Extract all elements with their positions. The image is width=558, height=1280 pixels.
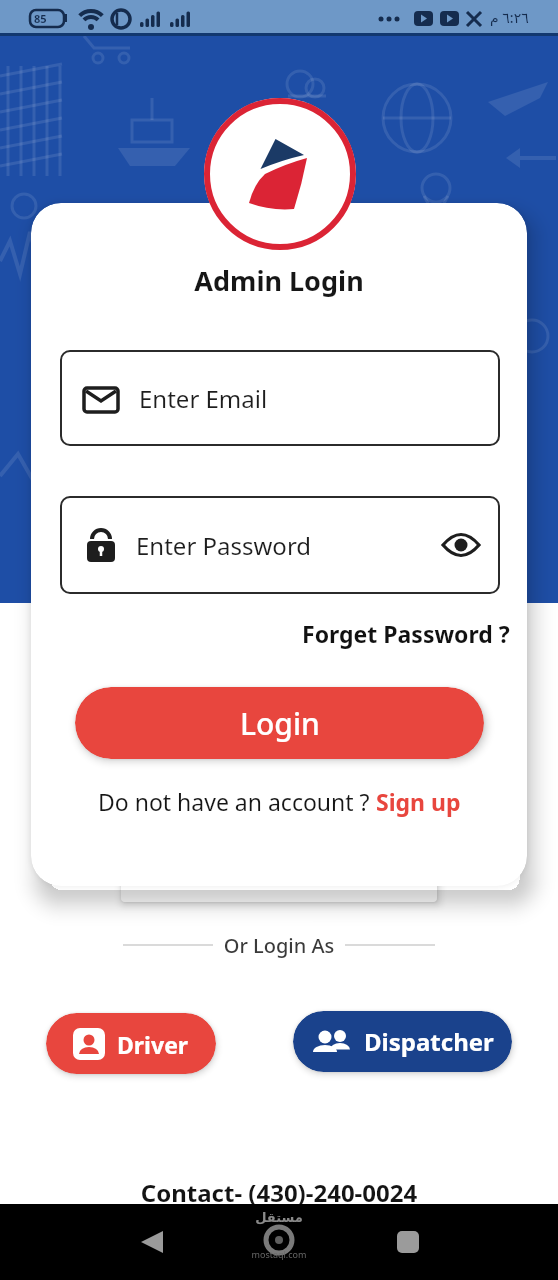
button[interactable]: Enter Password [60,496,500,594]
staticText: مستقل [0,1210,558,1225]
button[interactable]: Dispatcher [293,1011,512,1072]
button[interactable]: Login [75,687,484,759]
staticText: Contact- (430)-240-0024 [0,1176,558,1209]
staticText: Do not have an account ? [98,786,376,817]
staticText: Login [240,703,320,744]
button[interactable]: Sign up [376,786,461,817]
staticText: Or Login As [0,932,558,959]
button[interactable]: Forget Password ? [300,616,510,650]
button[interactable]: Driver [46,1013,216,1074]
staticText: Enter Password [136,529,312,562]
staticText: mostaql.com [0,1248,558,1260]
staticText: Driver [117,1029,189,1060]
staticText: 85 [34,11,47,26]
staticText: Forget Password ? [302,618,510,649]
button[interactable]: Enter Email [60,350,500,446]
staticText: ٦:٢٦ م [490,8,529,27]
staticText: Enter Email [139,382,268,415]
staticText: Sign up [376,786,461,817]
staticText: Dispatcher [364,1025,494,1058]
staticText: Admin Login [0,262,558,299]
